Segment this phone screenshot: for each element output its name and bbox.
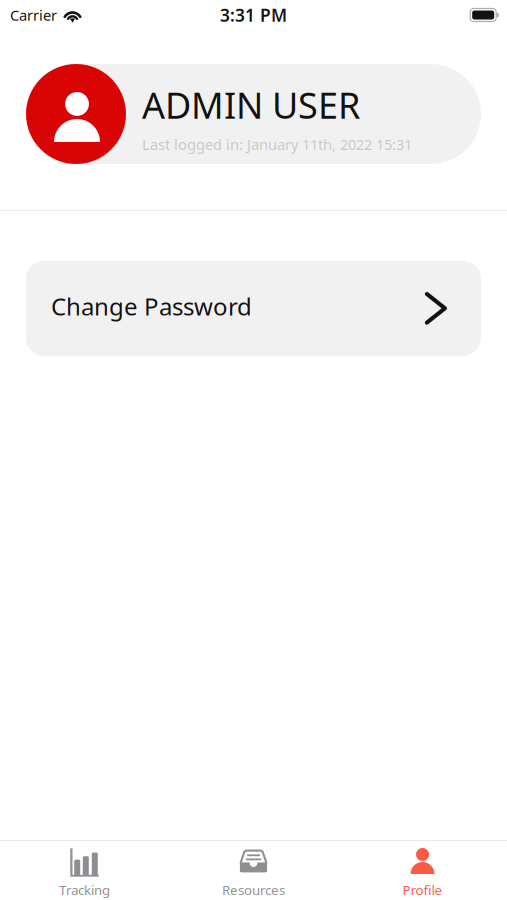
button[interactable]: Change Password (26, 261, 481, 356)
staticText: ADMIN USER (142, 81, 360, 129)
staticText: Carrier (10, 5, 57, 25)
staticText: Last logged in: January 11th, 2022 15:31 (142, 135, 412, 154)
staticText: Tracking (59, 881, 110, 899)
button[interactable]: Tracking (0, 841, 169, 900)
staticText: 3:31 PM (220, 3, 287, 26)
staticText: Resources (222, 881, 285, 899)
button[interactable]: Profile (338, 841, 507, 900)
button[interactable]: Resources (169, 841, 338, 900)
staticText: Change Password (51, 290, 252, 322)
staticText: Profile (402, 881, 442, 899)
